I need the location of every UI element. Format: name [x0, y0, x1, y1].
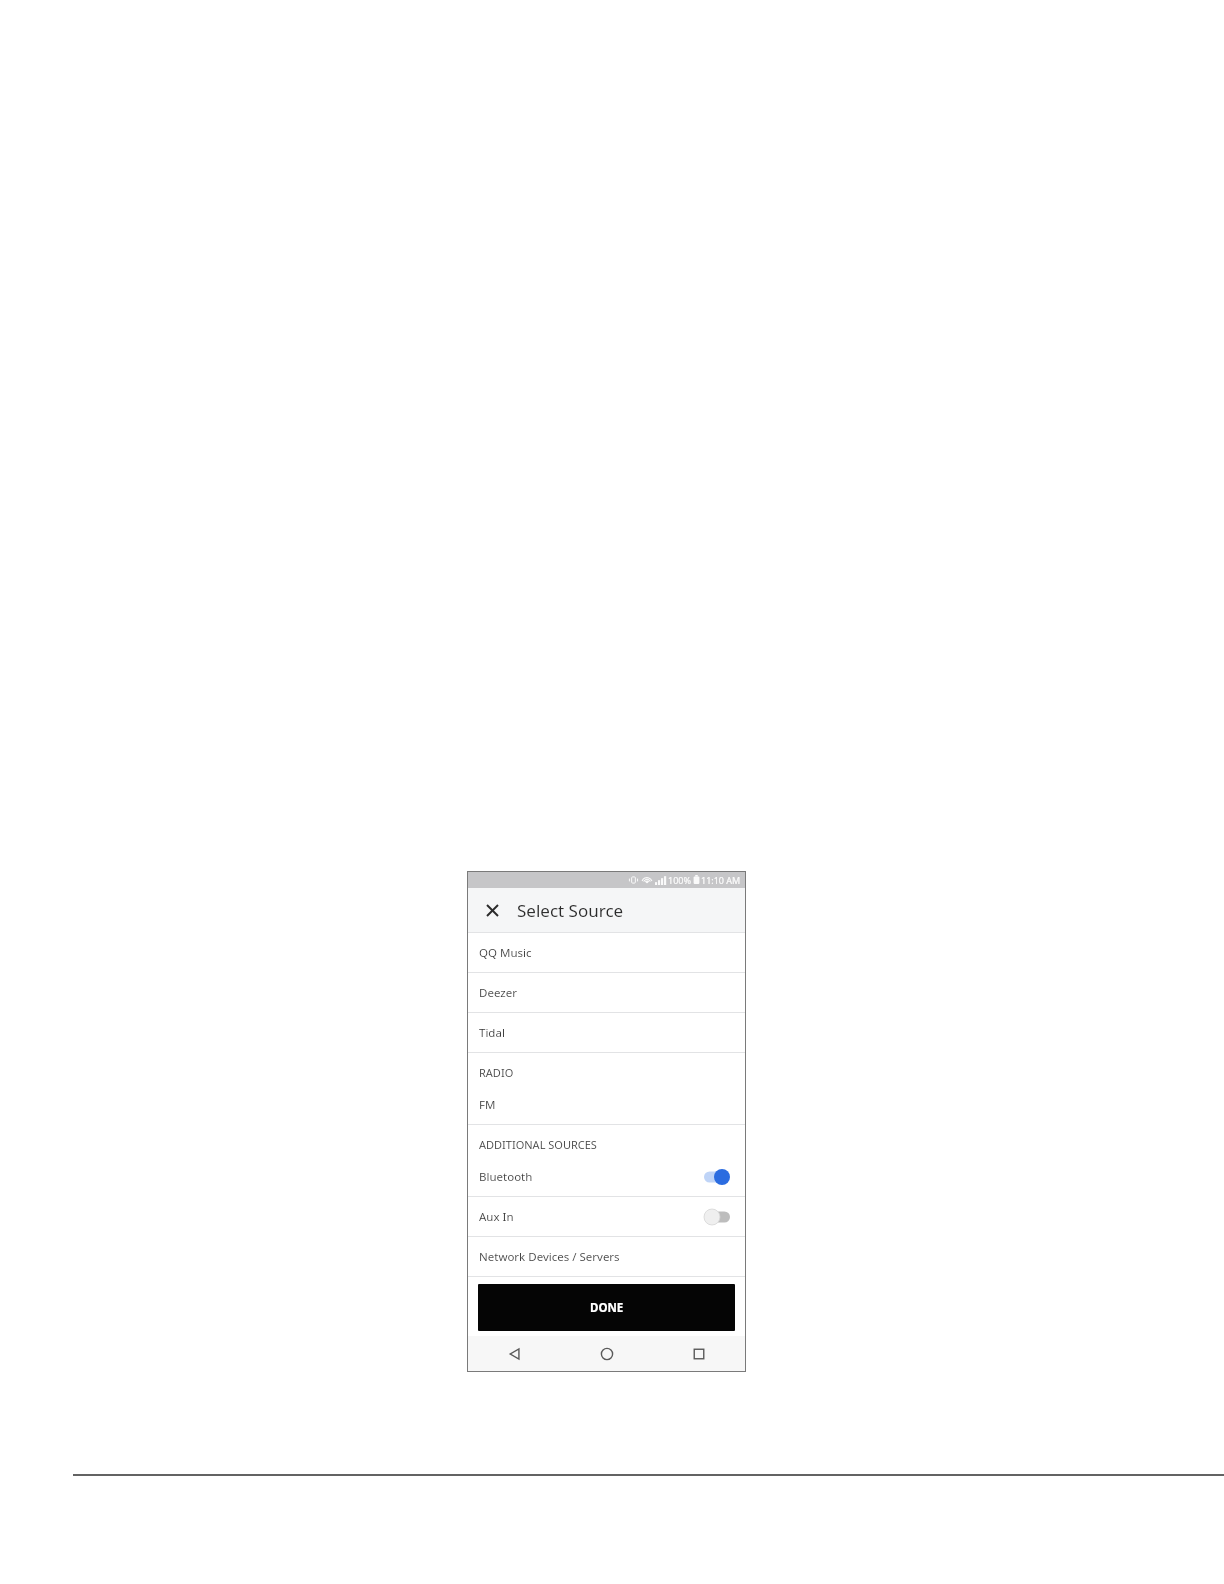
button[interactable]: Close [476, 894, 508, 926]
staticText: RADIO [479, 1065, 514, 1080]
button[interactable]: Back [468, 1336, 561, 1371]
staticText: Aux In [479, 1209, 514, 1225]
button[interactable]: Bluetooth [468, 1157, 745, 1196]
button[interactable]: Recent apps [653, 1336, 745, 1371]
staticText: Select Source [517, 899, 624, 922]
staticText: DONE [590, 1300, 624, 1316]
button[interactable]: Home [561, 1336, 653, 1371]
staticText: 11:10 AM [701, 874, 741, 886]
staticText: Tidal [479, 1025, 505, 1041]
staticText: FM [479, 1097, 496, 1113]
staticText: 100% [668, 874, 691, 886]
button[interactable]: DONE [478, 1284, 735, 1331]
staticText: Bluetooth [479, 1169, 533, 1185]
staticText: Network Devices / Servers [479, 1249, 620, 1265]
button[interactable]: Network Devices / Servers [468, 1237, 745, 1276]
staticText: Deezer [479, 985, 517, 1001]
button[interactable]: Deezer [468, 973, 745, 1012]
staticText: QQ Music [479, 945, 532, 961]
staticText: ADDITIONAL SOURCES [479, 1137, 597, 1152]
button[interactable]: FM [468, 1085, 745, 1124]
button[interactable]: Tidal [468, 1013, 745, 1052]
button[interactable]: QQ Music [468, 933, 745, 972]
button[interactable]: Aux In [468, 1197, 745, 1236]
